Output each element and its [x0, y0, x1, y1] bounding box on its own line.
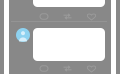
button[interactable]: Repost	[63, 13, 72, 20]
button[interactable]: Like	[87, 65, 96, 72]
button[interactable]: Like	[87, 13, 96, 20]
button[interactable]: Repost	[63, 65, 72, 72]
button[interactable]: Reply	[40, 66, 48, 71]
button[interactable]: Reply	[40, 14, 48, 19]
